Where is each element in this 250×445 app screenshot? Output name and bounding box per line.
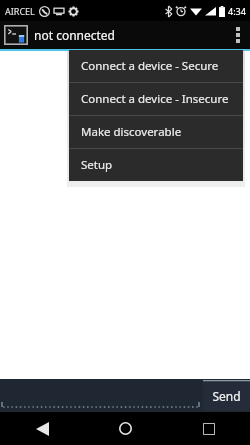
button[interactable]: Make discoverable [69, 116, 243, 148]
button[interactable]: Connect a device - Secure [69, 50, 243, 82]
button[interactable]: Recent apps [167, 412, 250, 445]
staticText: 4:34 [228, 5, 246, 17]
button[interactable]: Setup [69, 149, 243, 181]
staticText: Send [212, 388, 241, 404]
staticText: not connected [34, 27, 115, 43]
staticText: Connect a device - Secure [81, 58, 219, 74]
button[interactable]: More options [226, 21, 250, 49]
staticText: AIRCEL [5, 5, 35, 17]
button[interactable] [0, 379, 203, 412]
button[interactable]: Home [84, 412, 167, 445]
button[interactable]: Back [0, 412, 84, 445]
staticText: Connect a device - Insecure [81, 91, 229, 107]
button[interactable]: Send [203, 380, 250, 411]
staticText: Make discoverable [81, 124, 182, 140]
button[interactable]: Connect a device - Insecure [69, 83, 243, 115]
staticText: Setup [81, 157, 113, 173]
